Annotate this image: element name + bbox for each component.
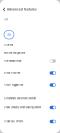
- button[interactable]: Screenshots and screen recorder: [0, 94, 60, 103]
- button[interactable]: Smart suggestions: [0, 81, 60, 89]
- staticText: Show contacts when sharing content: [4, 106, 41, 109]
- staticText: Labs: [4, 18, 8, 21]
- staticText: Bixby Routines: [4, 71, 20, 74]
- staticText: Smart suggestions: [4, 83, 23, 86]
- button[interactable]: Video call effects: [0, 117, 60, 126]
- staticText: Side key: [4, 43, 13, 46]
- button[interactable]: Advanced features: [0, 2, 60, 17]
- button[interactable]: Motions and gestures: [0, 49, 60, 57]
- button[interactable]: Show contacts when sharing content: [0, 102, 60, 113]
- staticText: Labs: [7, 33, 11, 36]
- button[interactable]: Labs: [4, 30, 14, 39]
- staticText: Motions and gestures: [4, 51, 25, 54]
- button[interactable]: Side key: [0, 41, 60, 49]
- button[interactable]: Bixby Routines: [0, 69, 60, 77]
- button[interactable]: One-handed mode: [0, 57, 60, 65]
- staticText: Advanced features: [7, 8, 37, 11]
- staticText: One-handed mode: [4, 59, 21, 62]
- staticText: Screenshots and screen recorder: [4, 97, 36, 100]
- staticText: Video call effects: [4, 120, 23, 123]
